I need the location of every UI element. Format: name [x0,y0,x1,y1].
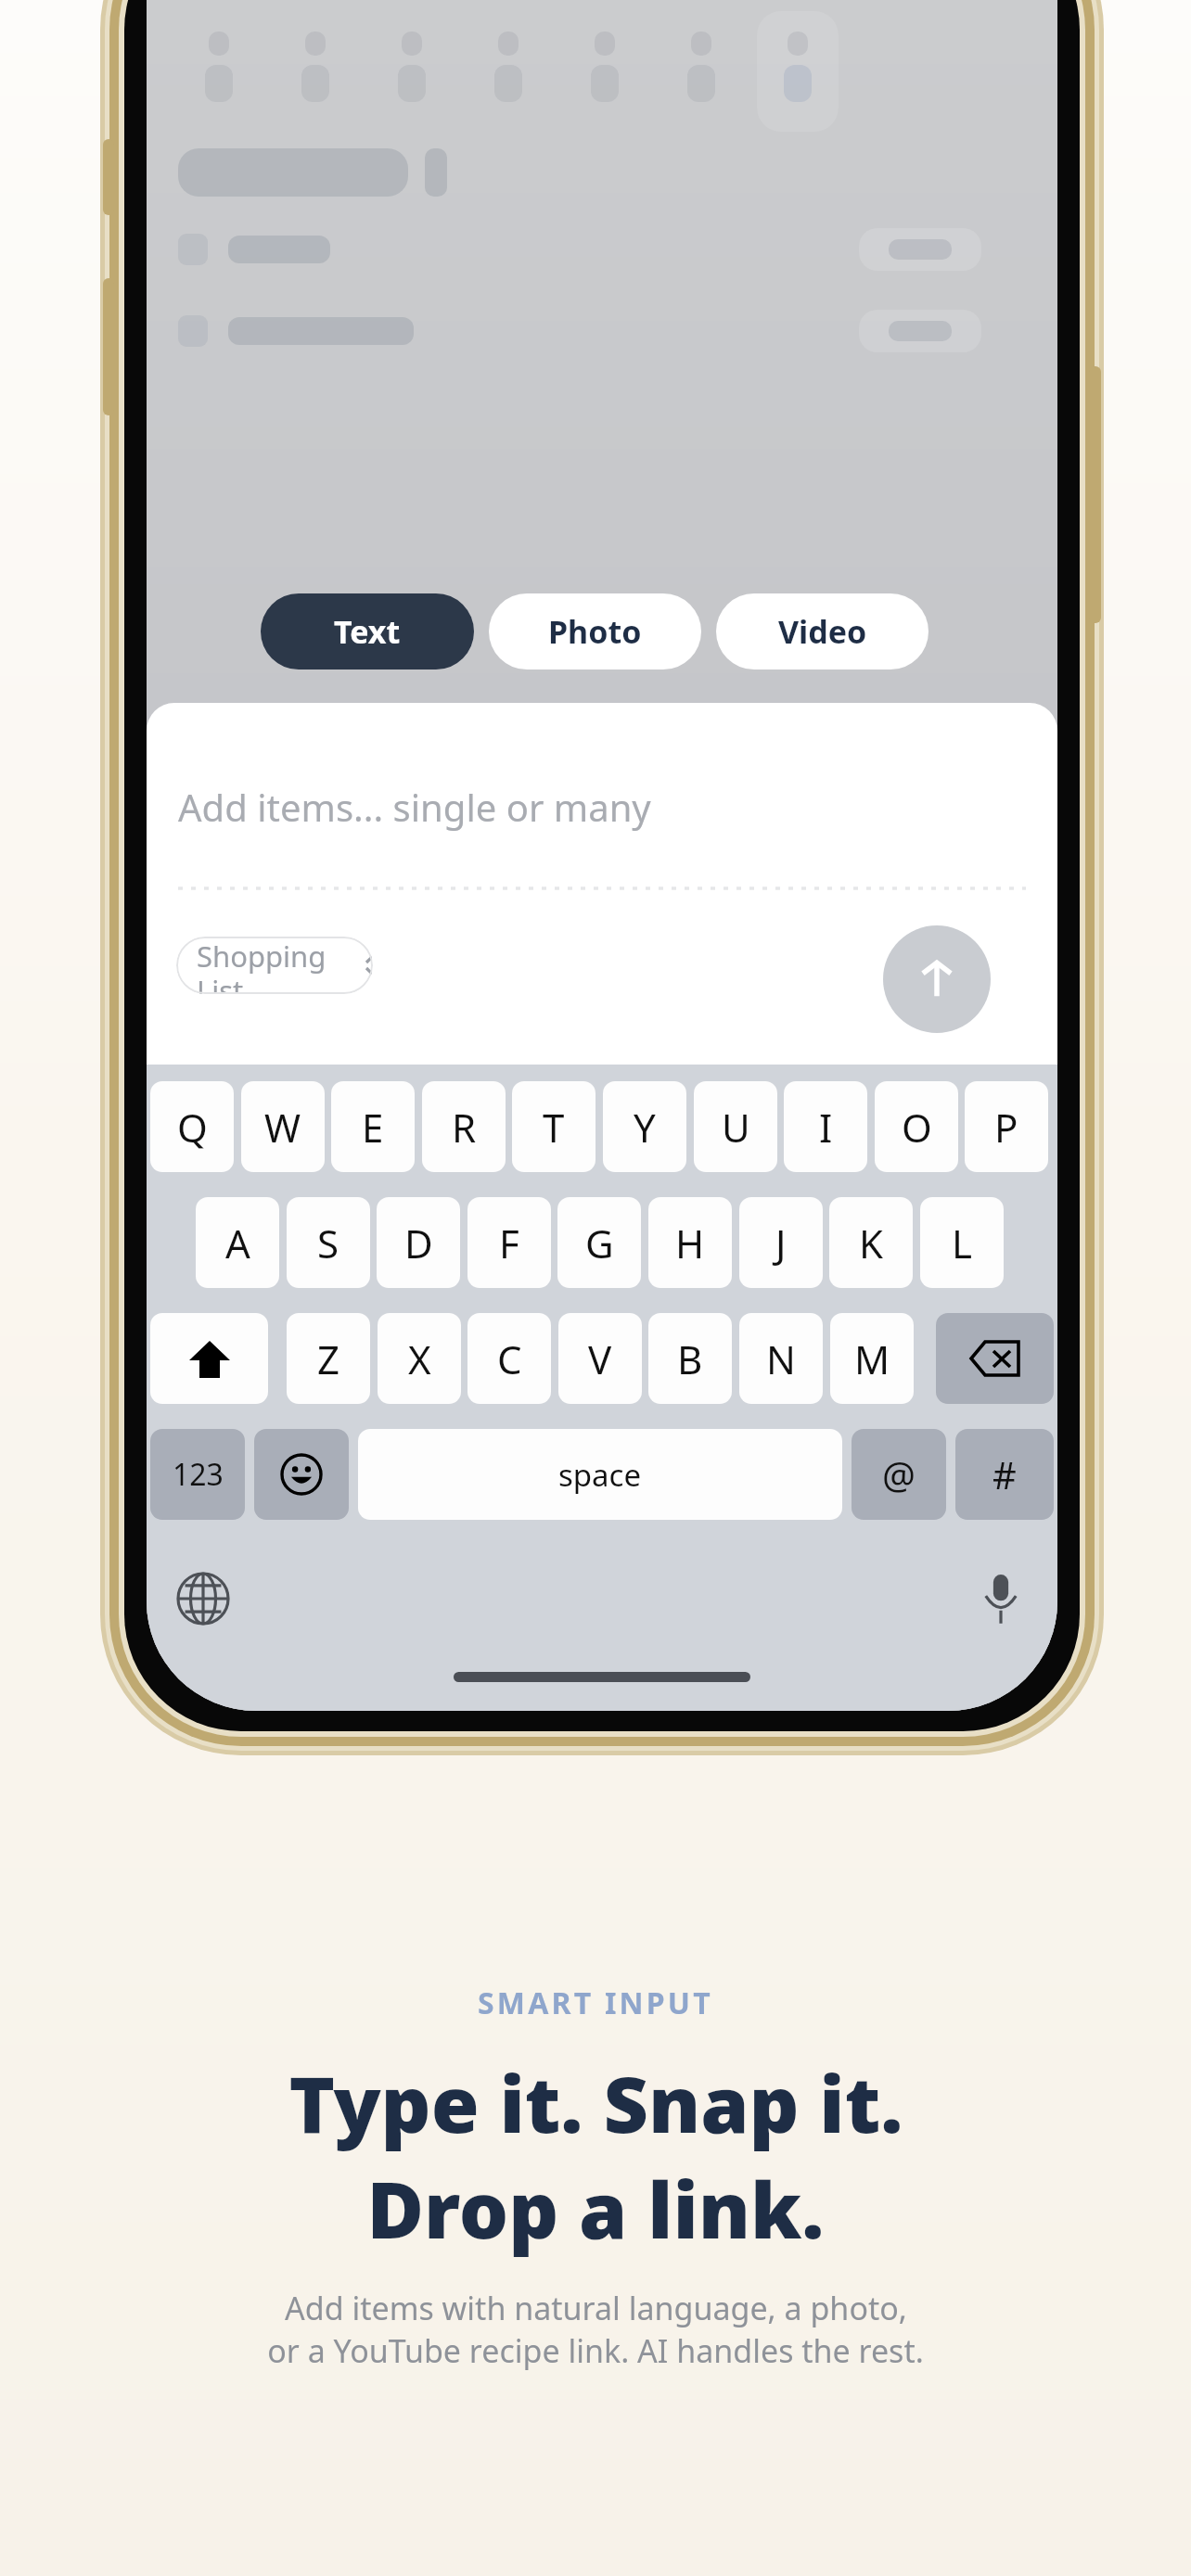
button[interactable]: # [955,1429,1054,1520]
staticText: # [992,1449,1017,1499]
button[interactable]: L [920,1197,1004,1288]
button[interactable]: Y [603,1081,686,1172]
button[interactable]: P [965,1081,1048,1172]
button[interactable]: H [648,1197,732,1288]
staticText: Drop a link. [366,2155,825,2261]
staticText: D [404,1217,433,1269]
button[interactable]: Emoji [254,1429,349,1520]
staticText: Shopping List [197,937,373,994]
button[interactable]: Text [261,593,474,670]
button[interactable]: U [694,1081,777,1172]
staticText: W [264,1101,301,1154]
button[interactable]: O [875,1081,958,1172]
staticText: Add items... single or many [178,782,651,832]
staticText: or a YouTube recipe link. AI handles the… [267,2329,924,2372]
button[interactable]: C [467,1313,551,1404]
button[interactable]: space [358,1429,842,1520]
staticText: F [499,1217,519,1269]
staticText: O [902,1101,932,1154]
staticText: H [675,1217,705,1269]
button[interactable]: Z [287,1313,370,1404]
button[interactable]: N [739,1313,823,1404]
staticText: R [452,1101,477,1154]
staticText: Text [334,610,401,653]
button[interactable]: Send [883,925,991,1033]
button[interactable]: B [648,1313,732,1404]
staticText: Photo [548,610,642,653]
staticText: T [543,1101,565,1154]
button[interactable]: A [196,1197,279,1288]
staticText: Z [317,1333,340,1385]
staticText: Q [177,1101,208,1154]
staticText: U [722,1101,750,1154]
staticText: J [775,1217,787,1269]
staticText: SMART INPUT [478,1983,713,2023]
staticText: S [317,1217,339,1269]
button[interactable]: Q [150,1081,234,1172]
button[interactable]: Photo [489,593,701,670]
button[interactable]: Shopping List [176,937,373,994]
staticText: Video [778,610,867,653]
button[interactable]: Video [716,593,928,670]
staticText: X [408,1333,431,1385]
staticText: A [225,1217,250,1269]
button[interactable]: G [557,1197,641,1288]
button[interactable]: K [829,1197,913,1288]
button[interactable]: R [422,1081,506,1172]
staticText: N [766,1333,796,1385]
staticText: Y [634,1101,656,1154]
staticText: C [497,1333,522,1385]
button[interactable]: D [377,1197,460,1288]
button[interactable]: S [287,1197,370,1288]
staticText: V [588,1333,612,1385]
staticText: 123 [173,1454,224,1495]
staticText: B [677,1333,703,1385]
button[interactable]: M [830,1313,914,1404]
button[interactable]: V [558,1313,642,1404]
button[interactable]: 123 [150,1429,245,1520]
staticText: I [819,1101,833,1154]
button[interactable]: Add items... single or many [178,782,651,832]
staticText: E [362,1101,384,1154]
staticText: P [994,1101,1018,1154]
staticText: Type it. Snap it. [288,2049,903,2155]
button[interactable]: Shift [150,1313,268,1404]
staticText: L [952,1217,973,1269]
button[interactable]: Change keyboard [165,1561,241,1637]
button[interactable]: F [467,1197,551,1288]
button[interactable]: T [512,1081,595,1172]
button[interactable]: @ [852,1429,946,1520]
staticText: M [854,1333,890,1385]
button[interactable]: Voice input [963,1561,1039,1637]
staticText: G [585,1217,614,1269]
staticText: K [859,1217,883,1269]
staticText: @ [882,1449,916,1499]
button[interactable]: J [739,1197,823,1288]
button[interactable]: E [331,1081,415,1172]
button[interactable]: W [241,1081,325,1172]
button[interactable]: Backspace [936,1313,1054,1404]
button[interactable]: I [784,1081,867,1172]
staticText: space [558,1454,642,1496]
staticText: Add items with natural language, a photo… [285,2287,907,2329]
button[interactable]: X [378,1313,461,1404]
